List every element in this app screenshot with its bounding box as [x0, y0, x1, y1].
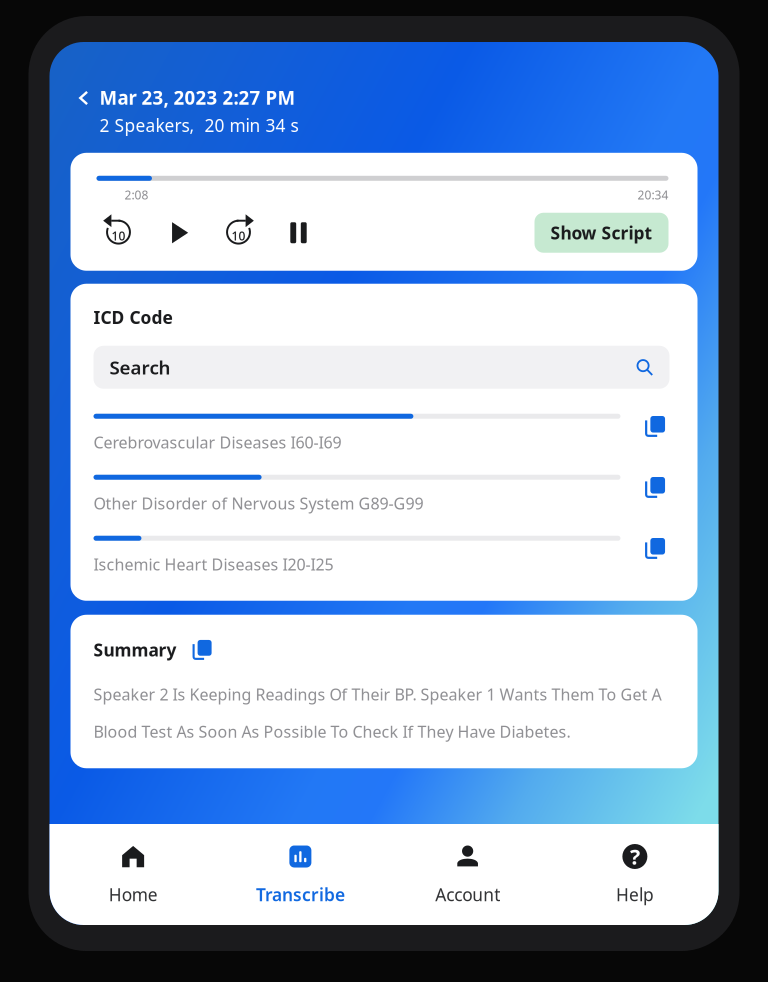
staticText: Show Script — [550, 221, 652, 244]
staticText: Help — [616, 883, 654, 906]
staticText: 10 — [231, 228, 245, 244]
staticText: 10 — [111, 228, 125, 244]
button[interactable]: ? — [551, 824, 718, 925]
staticText: Summary — [93, 638, 176, 661]
staticText: 20:34 — [637, 187, 668, 203]
button[interactable]: Skip back 10 seconds — [96, 213, 140, 253]
staticText: ICD Code — [93, 306, 172, 329]
staticText: Home — [109, 883, 158, 906]
staticText: Account — [435, 883, 500, 906]
staticText: 2 Speakers, 20 min 34 s — [99, 114, 298, 137]
staticText: Mar 23, 2023 2:27 PM — [99, 85, 295, 110]
button[interactable]: Home — [49, 824, 217, 925]
staticText: Search — [109, 355, 170, 380]
button[interactable]: Transcribe — [217, 824, 384, 925]
staticText: Speaker 2 Is Keeping Readings Of Their B… — [93, 684, 661, 705]
button[interactable]: Copy Ischemic Heart Diseases I20-I25 — [636, 536, 674, 561]
staticText: Ischemic Heart Diseases I20-I25 — [93, 554, 333, 575]
button[interactable]: Copy Other Disorder of Nervous System G8… — [636, 475, 674, 500]
button[interactable]: Copy summary — [190, 638, 214, 662]
button[interactable]: Copy Cerebrovascular Diseases I60-I69 — [636, 414, 674, 439]
staticText: Other Disorder of Nervous System G89-G99 — [93, 493, 423, 514]
button[interactable]: Account — [384, 824, 551, 925]
button[interactable]: Pause — [276, 213, 320, 253]
button[interactable]: Skip forward 10 seconds — [216, 213, 260, 253]
button[interactable]: Back — [67, 81, 99, 115]
staticText: ? — [630, 842, 640, 871]
button[interactable]: Show Script — [534, 213, 668, 253]
button[interactable]: Play — [156, 213, 200, 253]
staticText: Transcribe — [256, 883, 345, 906]
staticText: 2:08 — [124, 187, 148, 203]
staticText: Blood Test As Soon As Possible To Check … — [93, 721, 570, 742]
staticText: Cerebrovascular Diseases I60-I69 — [93, 432, 341, 453]
